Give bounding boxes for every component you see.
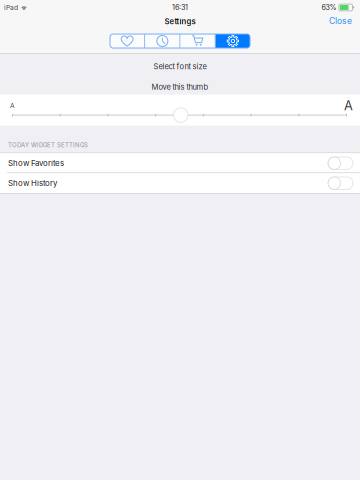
- button[interactable]: Font size: [173, 108, 188, 122]
- button[interactable]: History: [145, 34, 179, 48]
- staticText: 63%: [321, 3, 336, 12]
- staticText: Close: [329, 16, 352, 26]
- staticText: Settings: [164, 17, 195, 26]
- button[interactable]: Show Favorites: [0, 153, 360, 173]
- staticText: A: [10, 102, 15, 110]
- button[interactable]: Show History: [0, 173, 360, 193]
- staticText: 16:31: [172, 3, 188, 12]
- button[interactable]: Favorites: [110, 34, 144, 48]
- staticText: iPad: [4, 3, 18, 12]
- button[interactable]: Cart: [180, 34, 215, 48]
- staticText: A: [344, 98, 353, 113]
- staticText: Show History: [8, 178, 57, 188]
- staticText: Select font size: [153, 62, 206, 71]
- button[interactable]: Close: [321, 13, 360, 29]
- staticText: Move this thumb: [151, 82, 208, 92]
- button[interactable]: Settings: [216, 34, 250, 48]
- staticText: TODAY WIDGET SETTINGS: [8, 141, 88, 149]
- staticText: Show Favorites: [8, 158, 64, 168]
